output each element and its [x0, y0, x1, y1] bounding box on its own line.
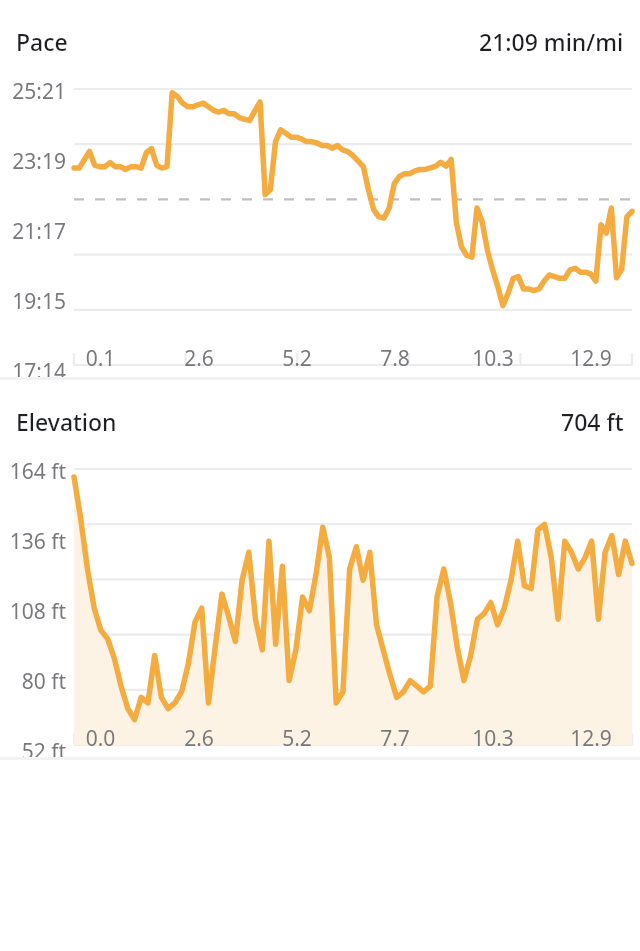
staticText: 5.2	[248, 724, 346, 753]
staticText: 10.3	[444, 344, 542, 373]
staticText: 0.1	[51, 344, 150, 373]
staticText: 136 ft	[0, 527, 66, 556]
staticText: 12.9	[542, 344, 640, 373]
staticText: 0.0	[51, 724, 150, 753]
staticText: 25:21	[0, 77, 66, 106]
staticText: 17:14	[0, 357, 66, 377]
staticText: 12.9	[542, 724, 640, 753]
staticText: 704 ft	[561, 406, 624, 437]
staticText: 19:15	[0, 287, 66, 316]
button[interactable]: Pace	[0, 0, 640, 377]
staticText: 10.3	[444, 724, 542, 753]
button[interactable]: Elevation	[0, 380, 640, 757]
staticText: 80 ft	[0, 667, 66, 696]
staticText: 164 ft	[0, 457, 66, 486]
staticText: 7.7	[346, 724, 444, 753]
staticText: 2.6	[150, 344, 248, 373]
staticText: 52 ft	[0, 737, 66, 757]
staticText: 2.6	[150, 724, 248, 753]
staticText: Elevation	[16, 406, 117, 437]
staticText: 21:17	[0, 217, 66, 246]
staticText: 108 ft	[0, 597, 66, 626]
staticText: 21:09 min/mi	[479, 26, 624, 57]
staticText: 7.8	[346, 344, 444, 373]
staticText: Pace	[16, 26, 68, 57]
staticText: 23:19	[0, 147, 66, 176]
staticText: 5.2	[248, 344, 346, 373]
